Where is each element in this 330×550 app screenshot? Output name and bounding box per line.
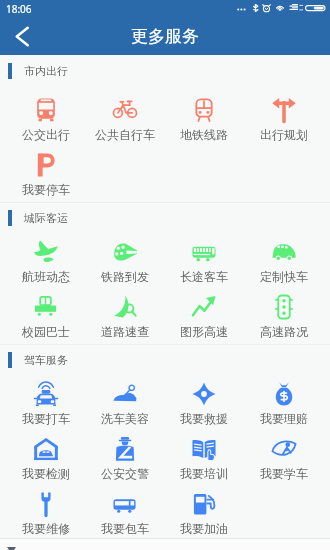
staticText: 洗车美容	[101, 411, 149, 426]
staticText: 公安交警	[101, 466, 149, 481]
staticText: 地铁线路	[180, 127, 228, 142]
staticText: 出行规划	[260, 127, 308, 142]
staticText: 高速路况	[260, 324, 308, 339]
staticText: 我要理赔	[260, 411, 308, 426]
staticText: 更多服务	[131, 26, 199, 47]
staticText: 定制快车	[260, 269, 308, 284]
button[interactable]: Back	[3, 539, 19, 550]
staticText: 驾车服务	[24, 353, 68, 367]
staticText: 我要停车	[22, 182, 70, 197]
button[interactable]: 我要维修	[6, 492, 85, 538]
button[interactable]: 洗车美容	[85, 382, 164, 428]
button[interactable]: 道路速查	[85, 295, 164, 341]
staticText: 校园巴士	[22, 324, 70, 339]
button[interactable]: 公安交警	[85, 437, 164, 483]
button[interactable]: 我要检测	[6, 437, 85, 483]
staticText: 公交出行	[22, 127, 70, 142]
staticText: 18:06	[6, 2, 32, 16]
button[interactable]: 长途客车	[164, 240, 244, 286]
button[interactable]: 航班动态	[6, 240, 85, 286]
button[interactable]: 我要加油	[164, 492, 244, 538]
staticText: 铁路到发	[101, 269, 149, 284]
staticText: 我要检测	[22, 466, 70, 481]
staticText: 我要维修	[22, 521, 70, 536]
button[interactable]: Back	[0, 18, 44, 55]
button[interactable]: 我要停车	[6, 153, 85, 199]
button[interactable]: 我要包车	[85, 492, 164, 538]
staticText: 我要学车	[260, 466, 308, 481]
button[interactable]: 铁路到发	[85, 240, 164, 286]
button[interactable]: 地铁线路	[164, 98, 244, 144]
button[interactable]: 公交出行	[6, 98, 85, 144]
button[interactable]: 我要理赔	[244, 382, 324, 428]
staticText: 道路速查	[101, 324, 149, 339]
staticText: 我要救援	[180, 411, 228, 426]
button[interactable]: 公共自行车	[85, 98, 164, 144]
button[interactable]: 定制快车	[244, 240, 324, 286]
staticText: 城际客运	[24, 211, 68, 225]
staticText: 我要包车	[101, 521, 149, 536]
button[interactable]: 我要救援	[164, 382, 244, 428]
staticText: 我要打车	[22, 411, 70, 426]
button[interactable]: 高速路况	[244, 295, 324, 341]
staticText: 公共自行车	[95, 127, 155, 142]
staticText: 长途客车	[180, 269, 228, 284]
staticText: 航班动态	[22, 269, 70, 284]
staticText: 图形高速	[180, 324, 228, 339]
staticText: 我要加油	[180, 521, 228, 536]
button[interactable]: 校园巴士	[6, 295, 85, 341]
button[interactable]: 我要学车	[244, 437, 324, 483]
staticText: 市内出行	[24, 64, 68, 78]
button[interactable]: 出行规划	[244, 98, 324, 144]
button[interactable]: 我要培训	[164, 437, 244, 483]
button[interactable]: 图形高速	[164, 295, 244, 341]
button[interactable]: 我要打车	[6, 382, 85, 428]
staticText: 我要培训	[180, 466, 228, 481]
